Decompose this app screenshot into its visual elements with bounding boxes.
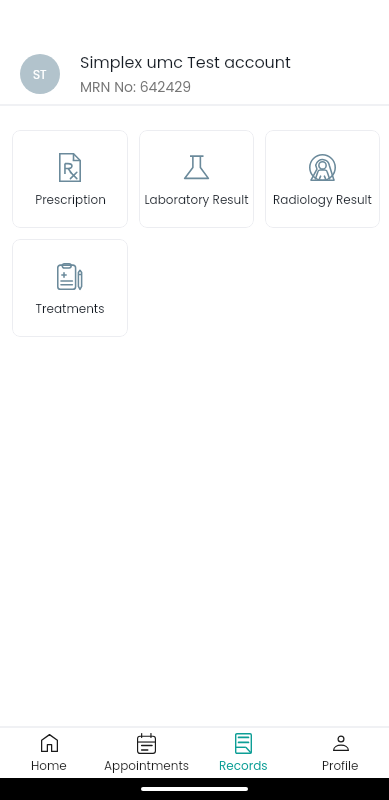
button[interactable]: Radiology Result bbox=[265, 130, 380, 228]
staticText: Simplex umc Test account bbox=[80, 51, 291, 73]
button[interactable]: ST bbox=[20, 54, 60, 94]
staticText: ST bbox=[33, 66, 47, 83]
button[interactable]: Profile bbox=[292, 728, 389, 777]
other: Home bbox=[41, 734, 58, 752]
staticText: Records bbox=[219, 757, 268, 774]
staticText: MRN No: 642429 bbox=[80, 77, 192, 97]
staticText: Home bbox=[31, 757, 67, 774]
button[interactable]: Records bbox=[195, 728, 292, 777]
button[interactable]: Appointments bbox=[98, 728, 195, 777]
other: Records bbox=[235, 733, 252, 754]
staticText: Treatments bbox=[35, 300, 105, 317]
staticText: Prescription bbox=[35, 191, 106, 208]
other: Profile bbox=[333, 736, 349, 751]
staticText: Radiology Result bbox=[273, 191, 372, 208]
button[interactable]: Home bbox=[0, 728, 98, 777]
staticText: Profile bbox=[322, 757, 359, 774]
staticText: Appointments bbox=[104, 757, 190, 774]
button[interactable]: Prescription bbox=[12, 130, 128, 228]
other: Appointments bbox=[137, 733, 156, 754]
button[interactable]: Laboratory Result bbox=[139, 130, 254, 228]
button[interactable]: Treatments bbox=[12, 239, 128, 337]
staticText: Laboratory Result bbox=[144, 191, 249, 208]
